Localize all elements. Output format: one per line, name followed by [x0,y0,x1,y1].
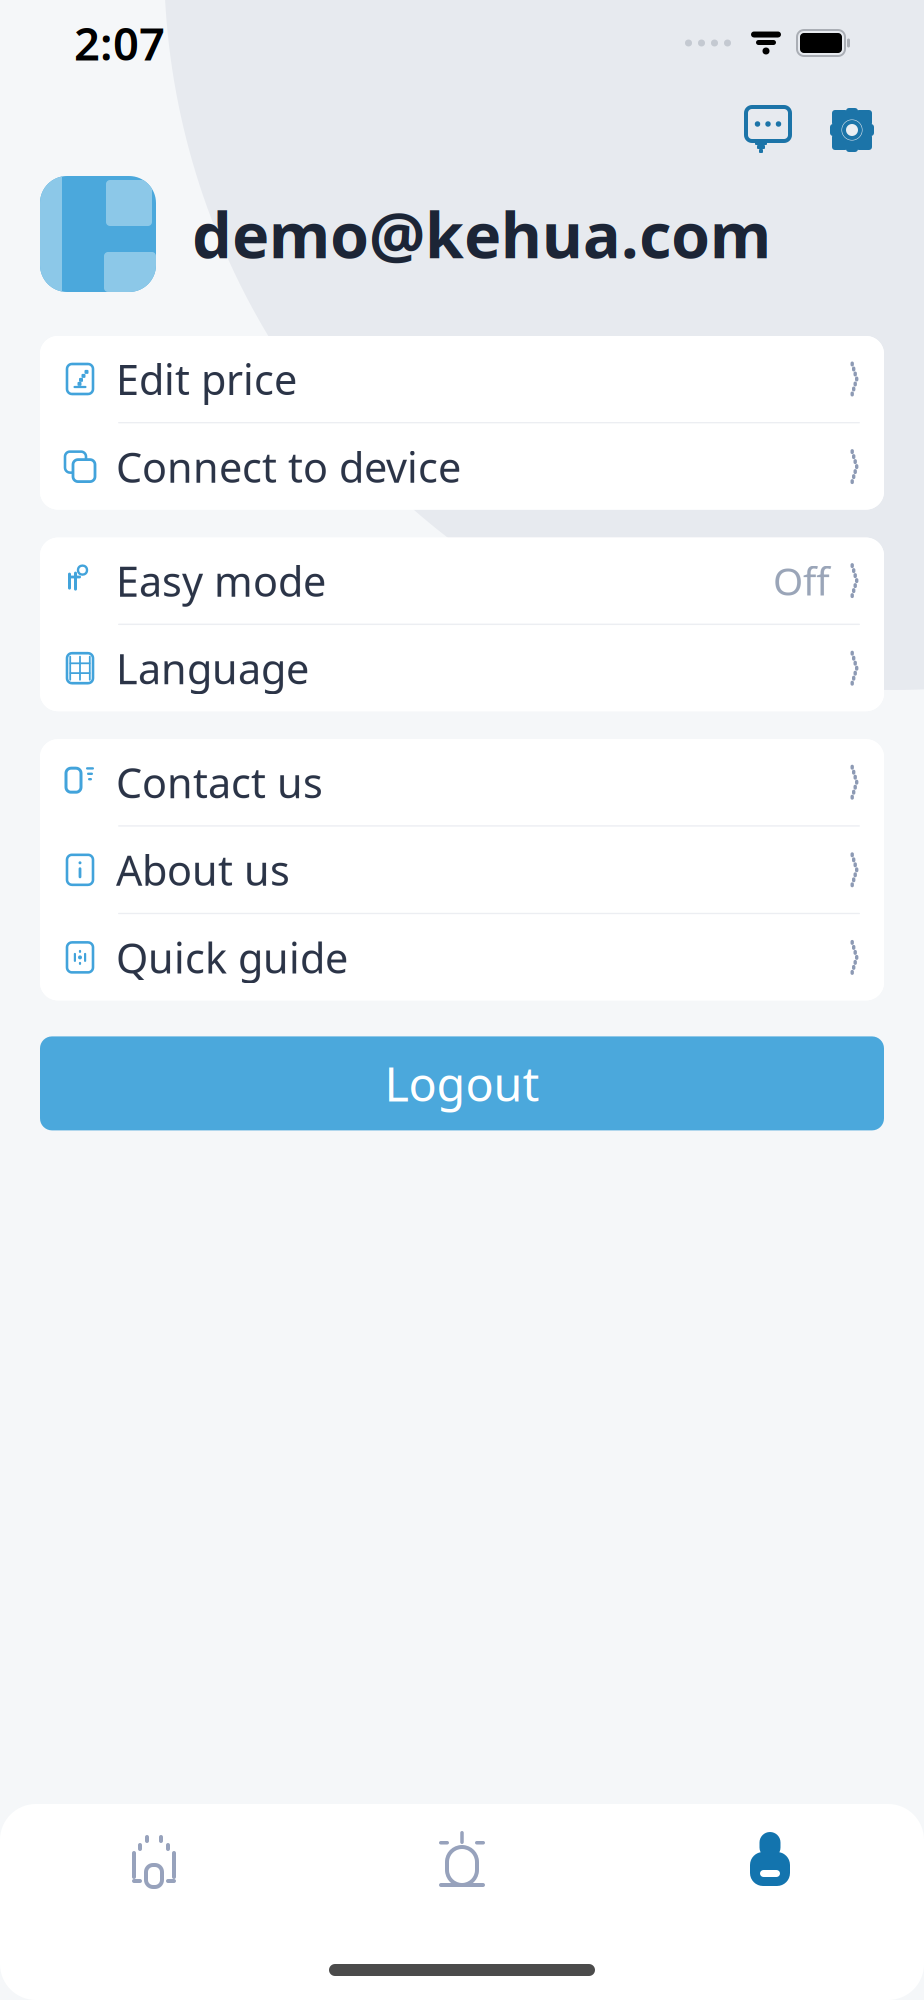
staticText: Quick guide [116,930,348,985]
button[interactable]: Alarms [308,1804,616,1914]
staticText: Logout [384,1052,539,1114]
button[interactable]: Home [0,1804,308,1914]
button[interactable]: About us [40,827,884,913]
button[interactable]: Messages [738,100,798,160]
staticText: 2:07 [74,13,165,73]
button[interactable]: Contact us [40,739,884,825]
staticText: Edit price [116,352,297,406]
staticText: Contact us [116,755,323,810]
button[interactable]: Profile [616,1804,924,1914]
button[interactable]: Language [40,625,884,711]
button[interactable]: Quick guide [40,914,884,1000]
staticText: Easy mode [116,553,326,608]
staticText: Language [116,641,309,696]
staticText: Connect to device [116,439,461,494]
button[interactable]: Connect to device [40,424,884,510]
button[interactable]: Easy mode [40,538,884,624]
button[interactable]: Edit price [40,336,884,422]
staticText: About us [116,842,290,897]
button[interactable]: Logout [40,1036,884,1130]
button[interactable]: Settings [798,102,880,158]
staticText: Off [773,555,830,606]
staticText: demo@kehua.com [192,192,771,276]
